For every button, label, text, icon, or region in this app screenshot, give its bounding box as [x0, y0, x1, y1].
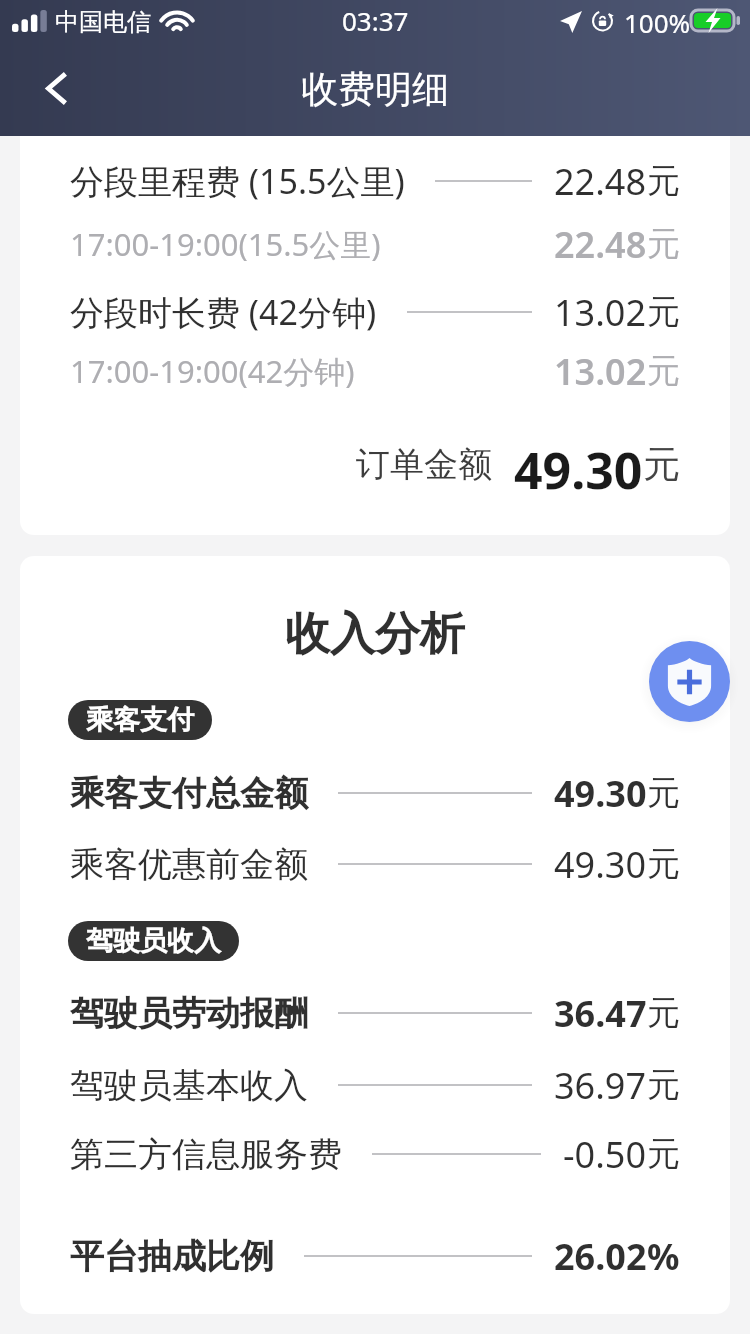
button[interactable]: Back [16, 48, 96, 128]
button[interactable]: 驾驶员收入 [68, 921, 239, 961]
staticText: 03:37 [342, 3, 409, 38]
staticText: 元 [647, 223, 680, 265]
staticText: 36.97 [554, 1061, 647, 1110]
staticText: 元 [647, 291, 680, 333]
staticText: 第三方信息服务费 [70, 1133, 342, 1176]
button[interactable]: 乘客支付 [68, 700, 212, 740]
staticText: 乘客优惠前金额 [70, 843, 308, 886]
staticText: 驾驶员收入 [86, 924, 221, 958]
staticText: 13.02 [554, 288, 647, 337]
staticText: 22.48 [554, 157, 647, 206]
staticText: 驾驶员劳动报酬 [70, 992, 308, 1035]
staticText: 乘客支付 [86, 703, 194, 737]
staticText: 100% [624, 5, 691, 40]
staticText: 49.30 [554, 840, 647, 889]
staticText: 分段里程费 (15.5公里) [70, 158, 405, 204]
staticText: 驾驶员基本收入 [70, 1064, 308, 1107]
staticText: 17:00-19:00(42分钟) [70, 350, 355, 392]
staticText: 收入分析 [20, 606, 730, 663]
staticText: 36.47 [554, 989, 647, 1038]
staticText: -0.50 [563, 1130, 647, 1179]
staticText: 17:00-19:00(15.5公里) [70, 223, 381, 265]
staticText: 元 [647, 160, 680, 202]
staticText: % [647, 1232, 680, 1281]
staticText: 元 [647, 1133, 680, 1175]
staticText: 22.48 [554, 220, 647, 269]
staticText: 平台抽成比例 [70, 1235, 274, 1278]
staticText: 元 [647, 350, 680, 392]
staticText: 13.02 [554, 347, 647, 396]
staticText: 26.02 [554, 1232, 647, 1281]
staticText: 分段时长费 (42分钟) [70, 289, 377, 335]
staticText: 49.30 [554, 769, 647, 818]
staticText: 元 [647, 843, 680, 885]
staticText: 49.30 [514, 436, 643, 492]
staticText: 中国电信 [55, 7, 151, 37]
staticText: 元 [647, 772, 680, 814]
staticText: 元 [643, 441, 680, 488]
staticText: 乘客支付总金额 [70, 772, 308, 815]
staticText: 元 [647, 1064, 680, 1106]
button[interactable]: Add insurance [649, 641, 730, 722]
staticText: 收费明细 [301, 66, 449, 113]
staticText: 元 [647, 992, 680, 1034]
staticText: 订单金额 [356, 443, 492, 486]
